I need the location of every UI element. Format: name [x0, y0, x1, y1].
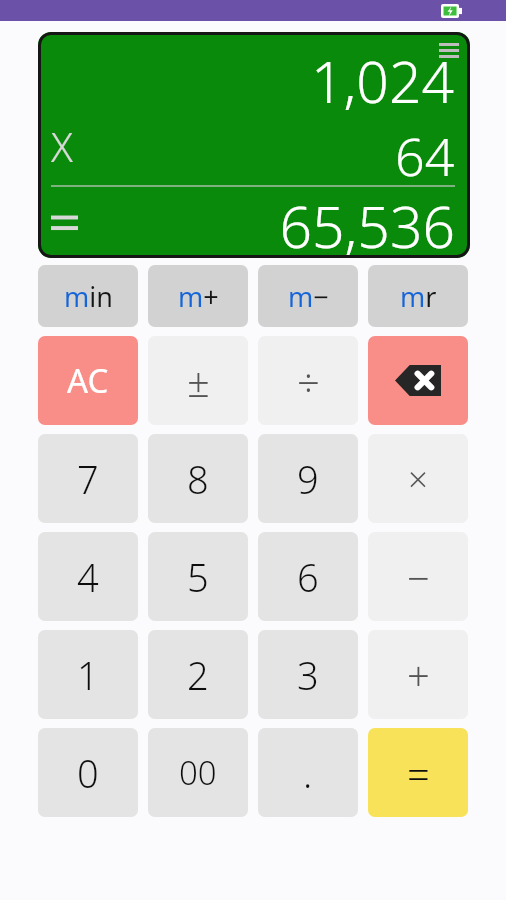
button[interactable]: 8: [148, 434, 248, 523]
staticText: 3: [297, 649, 319, 701]
staticText: ±: [187, 354, 210, 408]
staticText: +: [407, 648, 430, 702]
staticText: mr: [400, 278, 437, 315]
staticText: 8: [187, 453, 209, 505]
button[interactable]: 2: [148, 630, 248, 719]
staticText: 2: [187, 649, 209, 701]
button[interactable]: AC: [38, 336, 138, 425]
staticText: 1: [77, 649, 99, 701]
button[interactable]: +: [368, 630, 468, 719]
staticText: AC: [67, 358, 109, 403]
staticText: m+: [178, 278, 219, 315]
button[interactable]: mr: [368, 265, 468, 327]
button[interactable]: 3: [258, 630, 358, 719]
button[interactable]: 7: [38, 434, 138, 523]
staticText: 4: [77, 551, 99, 603]
button[interactable]: 9: [258, 434, 358, 523]
button[interactable]: 5: [148, 532, 248, 621]
button[interactable]: −: [368, 532, 468, 621]
staticText: 7: [77, 453, 99, 505]
button[interactable]: Menu: [38, 32, 470, 258]
staticText: 64: [395, 120, 455, 180]
button[interactable]: Menu: [439, 43, 459, 58]
button[interactable]: min: [38, 265, 138, 327]
button[interactable]: ÷: [258, 336, 358, 425]
button[interactable]: .: [258, 728, 358, 817]
button[interactable]: 1: [38, 630, 138, 719]
button[interactable]: ±: [148, 336, 248, 425]
button[interactable]: Backspace: [368, 336, 468, 425]
staticText: 1,024: [311, 42, 455, 120]
staticText: 65,536: [51, 187, 455, 258]
button[interactable]: =: [368, 728, 468, 817]
button[interactable]: 0: [38, 728, 138, 817]
staticText: X: [51, 119, 73, 173]
staticText: 6: [297, 551, 319, 603]
staticText: .: [303, 747, 313, 799]
other: Battery charging: [441, 4, 462, 18]
staticText: 0: [77, 747, 99, 799]
button[interactable]: 00: [148, 728, 248, 817]
button[interactable]: m+: [148, 265, 248, 327]
staticText: m−: [288, 278, 329, 315]
button[interactable]: 6: [258, 532, 358, 621]
staticText: min: [64, 278, 113, 315]
staticText: ×: [408, 455, 428, 503]
button[interactable]: 4: [38, 532, 138, 621]
staticText: −: [407, 550, 430, 604]
button[interactable]: m−: [258, 265, 358, 327]
staticText: 00: [179, 750, 217, 795]
staticText: 9: [297, 453, 319, 505]
staticText: ÷: [297, 354, 320, 408]
staticText: =: [407, 746, 430, 800]
staticText: 5: [187, 551, 209, 603]
button[interactable]: ×: [368, 434, 468, 523]
